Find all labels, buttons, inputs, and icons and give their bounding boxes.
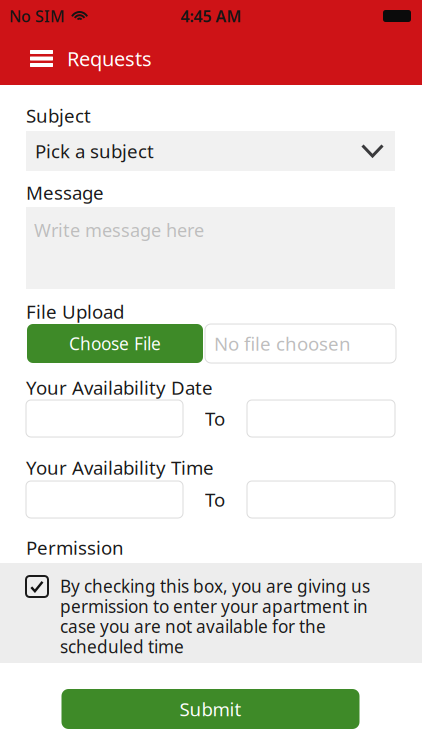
staticText: To bbox=[205, 487, 225, 512]
staticText: Submit bbox=[179, 697, 241, 721]
button[interactable]: Pick a subject bbox=[26, 131, 395, 171]
button[interactable]: Choose File bbox=[27, 324, 203, 363]
staticText: Write message here bbox=[34, 218, 204, 242]
button[interactable]: Submit bbox=[61, 689, 359, 729]
staticText: Requests bbox=[67, 45, 152, 72]
button[interactable]: Permission checkbox bbox=[26, 576, 48, 597]
staticText: 4:45 AM bbox=[180, 5, 241, 27]
staticText: Your Availability Date bbox=[26, 375, 213, 400]
staticText: Permission bbox=[26, 535, 124, 560]
staticText: Message bbox=[26, 180, 104, 205]
staticText: No SIM bbox=[9, 5, 65, 27]
button[interactable]: Menu bbox=[23, 40, 60, 77]
staticText: No file choosen bbox=[214, 331, 351, 356]
staticText: Choose File bbox=[69, 332, 161, 355]
staticText: File Upload bbox=[26, 299, 124, 324]
staticText: Pick a subject bbox=[35, 139, 154, 163]
staticText: Your Availability Time bbox=[26, 455, 214, 480]
staticText: By checking this box, you are giving us … bbox=[60, 576, 370, 657]
staticText: Subject bbox=[26, 103, 91, 128]
staticText: To bbox=[205, 406, 225, 431]
